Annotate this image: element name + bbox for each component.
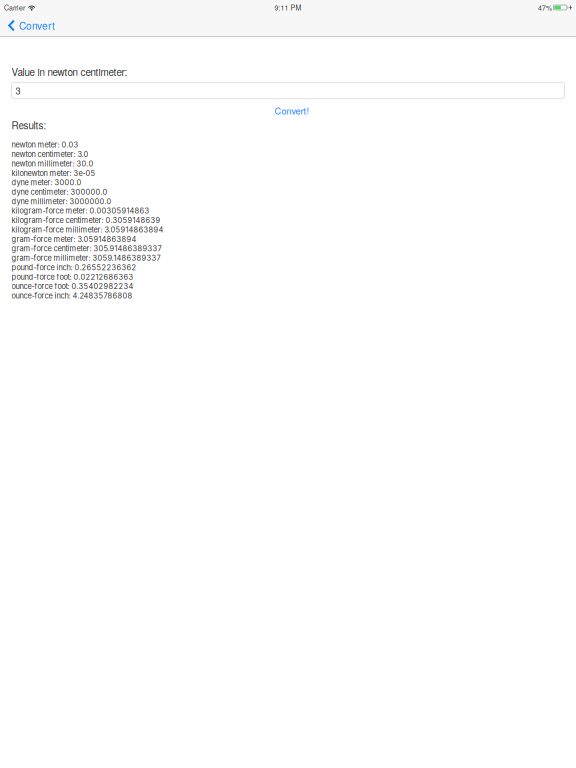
button[interactable]: Convert! [271,103,312,118]
staticText: Value in newton centimeter: [11,65,127,79]
staticText: gram-force centimeter: 305.91486389337 [11,244,161,253]
staticText: kilonewton meter: 3e-05 [11,169,95,178]
staticText: Convert [19,18,55,33]
staticText: newton centimeter: 3.0 [11,150,88,159]
staticText: newton millimeter: 30.0 [11,159,93,168]
staticText: 47% [538,2,552,12]
staticText: kilogram-force meter: 0.00305914863 [11,206,149,215]
staticText: gram-force meter: 3.05914863894 [11,235,136,244]
staticText: Convert! [274,104,309,117]
staticText: 9:11 PM [274,2,301,12]
staticText: Carrier [4,2,25,12]
staticText: 3 [15,84,20,97]
staticText: dyne centimeter: 300000.0 [11,187,107,196]
staticText: ounce-force foot: 0.35402982234 [11,282,133,291]
staticText: kilogram-force millimeter: 3.05914863894 [11,225,163,234]
button[interactable]: Convert [0,15,61,36]
staticText: gram-force millimeter: 3059.1486389337 [11,253,160,262]
staticText: ounce-force inch: 4.24835786808 [11,291,132,300]
staticText: pound-force foot: 0.02212686363 [11,272,133,281]
staticText: kilogram-force centimeter: 0.3059148639 [11,216,160,225]
staticText: newton meter: 0.03 [11,140,78,149]
staticText: pound-force inch: 0.26552236362 [11,263,136,272]
staticText: dyne meter: 3000.0 [11,178,81,187]
staticText: Results: [11,118,46,132]
staticText: dyne millimeter: 3000000.0 [11,197,111,206]
